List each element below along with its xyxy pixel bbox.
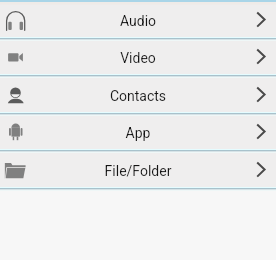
button[interactable]: App (0, 115, 276, 153)
other: Open Video (249, 47, 267, 65)
staticText: App (0, 125, 276, 141)
other: Open Contacts (249, 85, 267, 103)
button[interactable]: Audio (0, 3, 276, 41)
staticText: File/Folder (0, 163, 276, 179)
other: Open Audio (249, 10, 267, 28)
other: Open File/Folder (249, 160, 267, 178)
staticText: Contacts (0, 88, 276, 104)
button[interactable]: File/Folder (0, 153, 276, 191)
button[interactable]: Contacts (0, 78, 276, 116)
button[interactable]: Video (0, 40, 276, 78)
staticText: Video (0, 50, 276, 66)
staticText: Audio (0, 13, 276, 29)
other: Open App (249, 122, 267, 140)
